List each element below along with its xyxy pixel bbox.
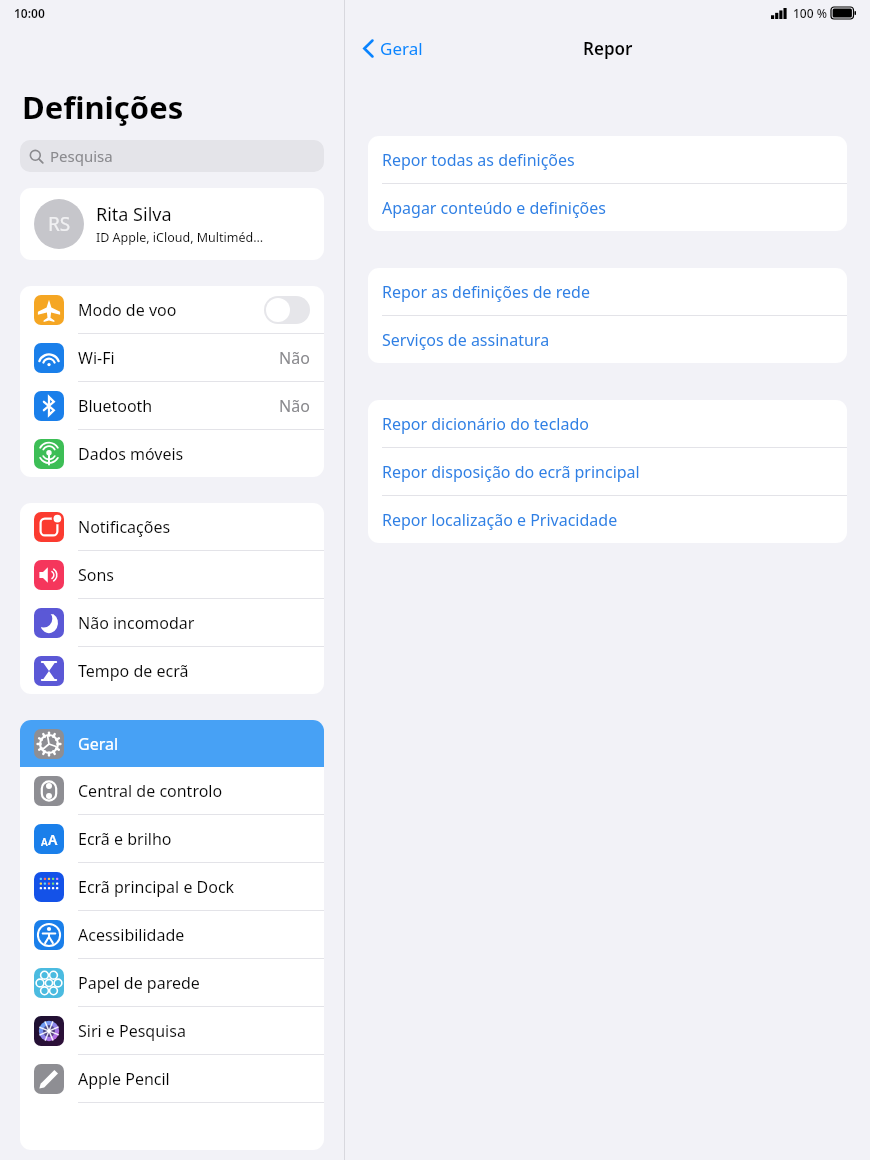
button[interactable]: Pesquisa [20,140,324,172]
button[interactable]: Repor todas as definições [368,136,847,183]
button[interactable]: RS [20,188,324,260]
staticText: Não incomodar [78,612,310,634]
staticText: Papel de parede [78,972,310,994]
button[interactable]: Dados móveis [20,430,324,477]
staticText: Pesquisa [50,146,113,166]
staticText: Repor dicionário do teclado [382,413,589,435]
staticText: Repor disposição do ecrã principal [382,461,640,483]
staticText: Siri e Pesquisa [78,1020,310,1042]
button[interactable]: Modo de voo [264,296,310,324]
button[interactable]: Repor as definições de rede [368,268,847,315]
button[interactable]: Apple Pencil [20,1055,324,1102]
button[interactable]: Repor localização e Privacidade [368,496,847,543]
staticText: Repor as definições de rede [382,281,590,303]
staticText: Ecrã principal e Dock [78,876,310,898]
button[interactable]: Tempo de ecrã [20,647,324,694]
button[interactable]: Modo de voo [20,286,324,333]
staticText: Geral [78,733,310,755]
staticText: Modo de voo [78,299,264,321]
button[interactable]: Siri e Pesquisa [20,1007,324,1054]
staticText: Central de controlo [78,780,310,802]
button[interactable]: Sons [20,551,324,598]
staticText: Repor localização e Privacidade [382,509,618,531]
staticText: Apple Pencil [78,1068,310,1090]
staticText: RS [48,211,71,237]
button[interactable]: Repor disposição do ecrã principal [368,448,847,495]
staticText: A [41,835,48,849]
button[interactable]: Acessibilidade [20,911,324,958]
staticText: Repor todas as definições [382,149,575,171]
staticText: Dados móveis [78,443,310,465]
staticText: ID Apple, iCloud, Multiméd… [96,229,264,246]
staticText: Não [279,395,310,417]
button[interactable]: Ecrã principal e Dock [20,863,324,910]
button[interactable]: Repor dicionário do teclado [368,400,847,447]
button[interactable]: Não incomodar [20,599,324,646]
button[interactable]: Geral [20,720,324,767]
staticText: Wi-Fi [78,347,279,369]
staticText: Sons [78,564,310,586]
staticText: Rita Silva [96,202,172,227]
button[interactable]: Notificações [20,503,324,550]
button[interactable]: A [20,815,324,862]
button[interactable]: Central de controlo [20,767,324,814]
button[interactable]: Wi-Fi [20,334,324,381]
staticText: Não [279,347,310,369]
staticText: Bluetooth [78,395,279,417]
staticText: Geral [380,37,423,60]
button[interactable]: Bluetooth [20,382,324,429]
staticText: Apagar conteúdo e definições [382,197,606,219]
button[interactable]: Apagar conteúdo e definições [368,184,847,231]
staticText: 100 % [793,5,827,21]
button[interactable]: Serviços de assinatura [368,316,847,363]
staticText: Definições [22,86,184,128]
staticText: Acessibilidade [78,924,310,946]
staticText: Serviços de assinatura [382,329,550,351]
staticText: A [48,830,58,849]
button[interactable]: Geral [357,33,429,64]
staticText: Ecrã e brilho [78,828,310,850]
staticText: 10:00 [14,5,45,21]
button[interactable]: Papel de parede [20,959,324,1006]
staticText: Notificações [78,516,310,538]
staticText: Tempo de ecrã [78,660,310,682]
staticText: Repor [583,37,633,60]
